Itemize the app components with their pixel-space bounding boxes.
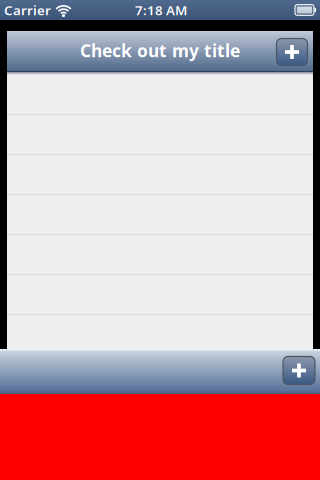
staticText: 7:18 AM <box>135 1 187 19</box>
staticText: Carrier <box>4 1 51 19</box>
button[interactable]: Add <box>276 38 307 65</box>
staticText: Check out my title <box>80 39 240 62</box>
button[interactable] <box>7 315 313 355</box>
button[interactable]: Add <box>283 356 315 384</box>
